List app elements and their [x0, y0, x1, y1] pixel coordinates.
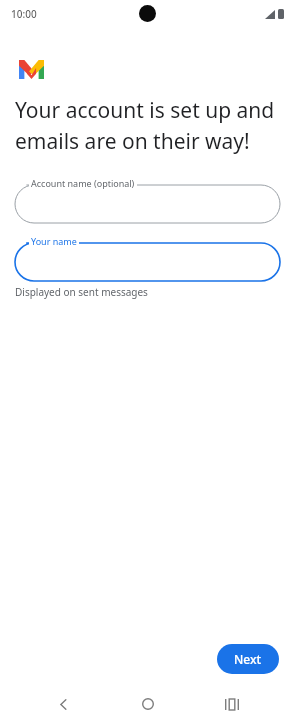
- staticText: Your account is set up and emails are on…: [15, 96, 284, 155]
- staticText: Next: [234, 651, 262, 667]
- button[interactable]: Back: [41, 686, 85, 722]
- staticText: Your name: [31, 235, 77, 247]
- button[interactable]: Recent apps: [210, 686, 254, 722]
- staticText: Displayed on sent messages: [15, 285, 148, 299]
- staticText: Account name (optional): [31, 177, 135, 189]
- button[interactable]: Next: [217, 644, 279, 674]
- button[interactable]: Your name: [15, 235, 280, 281]
- staticText: 10:00: [11, 7, 37, 21]
- button[interactable]: Account name (optional): [15, 177, 280, 223]
- button[interactable]: Home: [126, 686, 170, 722]
